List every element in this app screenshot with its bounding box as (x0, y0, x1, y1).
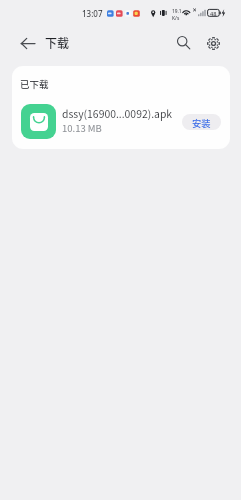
staticText: 10.13 MB (62, 121, 102, 135)
button[interactable]: Search (170, 31, 197, 53)
staticText: dssy(16900...0092).apk (62, 106, 173, 121)
staticText: 安装 (192, 116, 211, 129)
button[interactable]: dssy(16900...0092).apk (12, 101, 230, 142)
staticText: K/s (172, 15, 180, 22)
staticText: 48 (210, 10, 217, 18)
staticText: 已下载 (20, 77, 49, 91)
staticText: 19.1 (172, 8, 182, 15)
staticText: 下载 (45, 34, 70, 51)
staticText: 13:07 (82, 8, 103, 19)
button[interactable]: Back (14, 32, 42, 54)
button[interactable]: Settings (200, 32, 227, 54)
button[interactable]: 安装 (182, 114, 221, 130)
